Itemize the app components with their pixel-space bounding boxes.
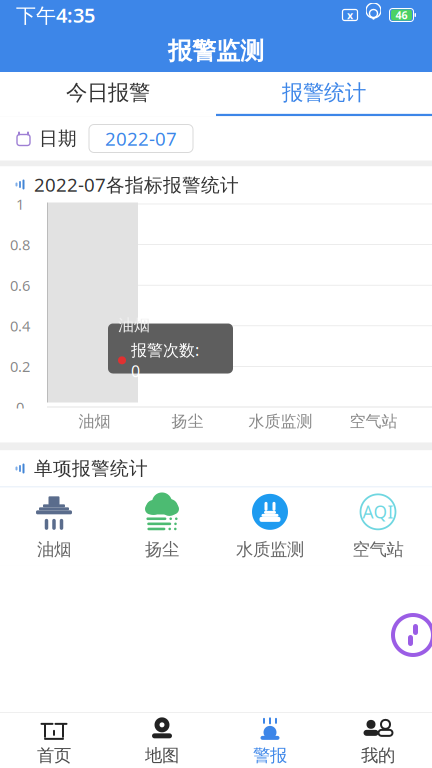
staticText: 首页: [37, 745, 71, 766]
button[interactable]: 快捷操作: [390, 612, 432, 658]
staticText: 油烟: [118, 315, 150, 335]
staticText: 今日报警: [66, 80, 150, 106]
staticText: 扬尘: [145, 539, 179, 560]
staticText: 警报: [253, 745, 287, 766]
button[interactable]: 首页: [0, 713, 108, 768]
staticText: AQI: [362, 500, 393, 523]
staticText: 0.8: [10, 235, 30, 254]
staticText: 2022-07: [105, 126, 177, 151]
staticText: 0.6: [10, 275, 30, 295]
staticText: 1: [16, 194, 24, 214]
staticText: 2022-07各指标报警统计: [34, 172, 239, 197]
staticText: 空气站: [349, 412, 397, 431]
staticText: 下午4:35: [16, 2, 95, 28]
staticText: 报警统计: [282, 80, 366, 106]
staticText: 46: [395, 8, 407, 22]
staticText: 报警监测: [168, 36, 264, 66]
button[interactable]: 今日报警: [0, 72, 216, 116]
button[interactable]: 警报: [216, 713, 324, 768]
staticText: 油烟: [37, 539, 71, 560]
staticText: 报警次数: 0: [131, 339, 199, 382]
staticText: 水质监测: [248, 412, 312, 431]
staticText: 水质监测: [236, 539, 304, 560]
staticText: 日期: [39, 127, 77, 150]
staticText: 0.2: [10, 357, 30, 376]
staticText: x: [347, 8, 353, 22]
staticText: 单项报警统计: [34, 457, 148, 480]
button[interactable]: 地图: [108, 713, 216, 768]
button[interactable]: AQI: [324, 487, 432, 565]
staticText: 0.4: [10, 316, 30, 336]
button[interactable]: 2022-07: [89, 124, 193, 152]
button[interactable]: 报警统计: [216, 72, 432, 116]
staticText: 空气站: [352, 539, 403, 560]
staticText: 油烟: [78, 412, 110, 431]
button[interactable]: 油烟: [0, 487, 108, 565]
staticText: 地图: [145, 745, 179, 766]
staticText: 0: [16, 397, 24, 417]
staticText: 我的: [361, 745, 395, 766]
staticText: 扬尘: [171, 412, 203, 431]
button[interactable]: 扬尘: [108, 487, 216, 565]
button[interactable]: 我的: [324, 713, 432, 768]
button[interactable]: 水质监测: [216, 487, 324, 565]
